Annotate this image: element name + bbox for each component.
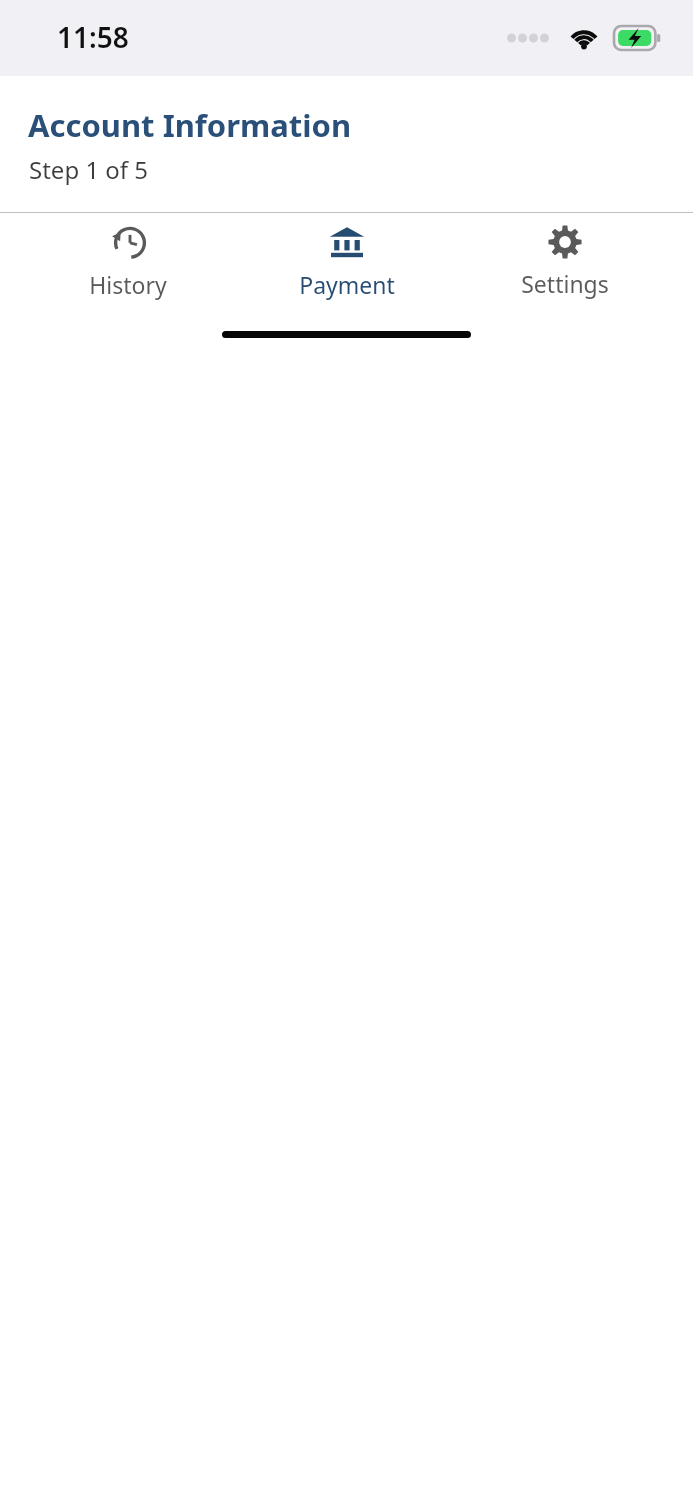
button[interactable]: Payment <box>257 216 437 306</box>
staticText: Step 1 of 5 <box>29 153 149 186</box>
button[interactable]: Settings <box>475 217 655 305</box>
staticText: Settings <box>521 268 609 299</box>
staticText: Payment <box>299 269 395 300</box>
staticText: Account Information <box>28 104 352 146</box>
button[interactable]: History <box>38 216 218 306</box>
staticText: 11:58 <box>57 18 129 56</box>
staticText: History <box>89 269 167 300</box>
